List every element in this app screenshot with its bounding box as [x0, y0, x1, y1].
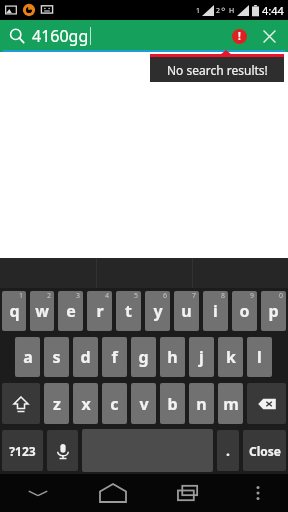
button[interactable]: t — [116, 291, 141, 331]
button[interactable]: o — [232, 291, 257, 331]
staticText: c — [110, 393, 119, 415]
staticText: . — [226, 441, 230, 460]
button[interactable]: Shift — [2, 383, 40, 424]
staticText: 4:44 — [262, 3, 284, 18]
staticText: 8 — [221, 291, 226, 301]
button[interactable]: Home — [75, 474, 151, 512]
button[interactable]: f — [102, 337, 127, 377]
staticText: Close — [249, 443, 281, 459]
button[interactable]: s — [44, 337, 69, 377]
staticText: r — [96, 300, 104, 322]
staticText: 2 — [47, 291, 52, 301]
button[interactable]: Hide keyboard — [0, 474, 75, 512]
button[interactable]: c — [102, 383, 127, 424]
button[interactable]: Search error — [228, 25, 250, 47]
button[interactable]: m — [218, 383, 243, 424]
staticText: f — [111, 346, 118, 368]
staticText: ?123 — [9, 443, 36, 459]
staticText: w — [35, 300, 49, 322]
button[interactable]: Search — [6, 25, 28, 47]
button[interactable]: . — [217, 430, 239, 471]
staticText: e — [66, 300, 76, 322]
button[interactable]: q — [2, 291, 26, 331]
staticText: j — [199, 346, 204, 368]
staticText: n — [196, 393, 207, 415]
button[interactable]: r — [87, 291, 112, 331]
staticText: 2 — [216, 6, 221, 16]
button[interactable]: b — [160, 383, 185, 424]
button[interactable]: Backspace — [247, 383, 286, 424]
staticText: 1 — [196, 6, 201, 16]
button[interactable]: x — [73, 383, 98, 424]
staticText: g — [138, 346, 149, 368]
staticText: i — [213, 300, 218, 322]
staticText: m — [223, 393, 239, 415]
staticText: No search results! — [167, 62, 268, 78]
button[interactable]: Recent apps — [151, 474, 227, 512]
staticText: 6 — [163, 291, 168, 301]
button[interactable]: j — [189, 337, 214, 377]
button[interactable]: h — [160, 337, 185, 377]
staticText: 1 — [19, 291, 24, 301]
button[interactable]: n — [189, 383, 214, 424]
button[interactable]: a — [15, 337, 40, 377]
staticText: z — [53, 393, 61, 415]
staticText: h — [167, 346, 178, 368]
button[interactable]: ?123 — [2, 430, 43, 471]
staticText: s — [52, 346, 61, 368]
staticText: 9 — [250, 291, 255, 301]
button[interactable]: u — [174, 291, 199, 331]
button[interactable]: Voice input — [47, 430, 78, 471]
button[interactable]: l — [247, 337, 272, 377]
button[interactable]: p — [261, 291, 286, 331]
staticText: H — [229, 6, 235, 16]
staticText: ! — [238, 29, 241, 43]
staticText: 4160gg — [32, 25, 89, 47]
staticText: l — [257, 346, 262, 368]
staticText: d — [80, 346, 91, 368]
button[interactable]: z — [44, 383, 69, 424]
button[interactable]: d — [73, 337, 98, 377]
staticText: a — [23, 346, 33, 368]
staticText: y — [153, 300, 163, 322]
button[interactable]: y — [145, 291, 170, 331]
button[interactable]: i — [203, 291, 228, 331]
staticText: 3 — [76, 291, 81, 301]
staticText: u — [181, 300, 192, 322]
button[interactable]: w — [30, 291, 54, 331]
staticText: v — [139, 393, 149, 415]
staticText: b — [167, 393, 178, 415]
staticText: q — [9, 300, 20, 322]
button[interactable]: Close — [243, 430, 286, 471]
staticText: p — [268, 300, 279, 322]
button[interactable]: g — [131, 337, 156, 377]
staticText: 0 — [279, 291, 284, 301]
button[interactable]: Clear search — [256, 23, 282, 49]
staticText: 5 — [134, 291, 139, 301]
staticText: x — [81, 393, 91, 415]
staticText: 4 — [105, 291, 110, 301]
staticText: o — [239, 300, 250, 322]
button[interactable]: k — [218, 337, 243, 377]
staticText: t — [125, 300, 132, 322]
button[interactable]: More options — [227, 474, 288, 512]
button[interactable]: e — [58, 291, 83, 331]
button[interactable]: v — [131, 383, 156, 424]
staticText: k — [226, 346, 236, 368]
staticText: 7 — [192, 291, 197, 301]
